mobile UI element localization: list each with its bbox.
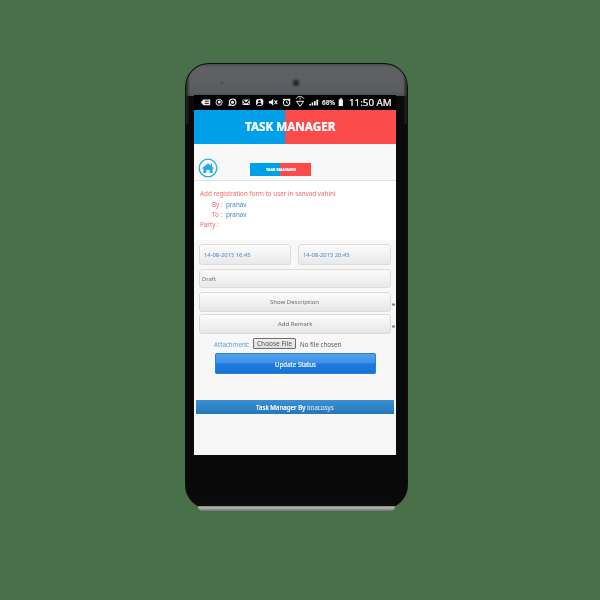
staticText: 14-08-2015 20:45 — [303, 251, 350, 259]
staticText: Add registration form to user in sanvad … — [200, 189, 336, 198]
staticText: imacosys — [307, 403, 334, 411]
staticText: By : — [212, 200, 226, 209]
staticText: 11:50 AM — [349, 96, 392, 109]
staticText: To : — [212, 210, 226, 219]
staticText: No file chosen — [300, 340, 342, 348]
button[interactable]: Task Manager By — [196, 400, 394, 414]
staticText: Draft — [202, 275, 216, 283]
staticText: Party : — [200, 220, 219, 229]
staticText: TASK MANAGER — [245, 118, 336, 134]
button[interactable]: Choose File — [257, 338, 292, 349]
button[interactable]: Home — [198, 158, 218, 178]
button[interactable]: Add Remark — [199, 314, 391, 334]
button[interactable]: Show Description — [199, 292, 391, 312]
staticText: Update Status — [275, 360, 317, 368]
staticText: TASK MANAGER — [266, 167, 297, 172]
staticText: 68% — [322, 98, 336, 107]
button[interactable]: Draft — [199, 269, 391, 288]
staticText: Choose File — [257, 339, 292, 348]
button[interactable]: 14-08-2015 20:45 — [298, 244, 391, 265]
button[interactable]: 14-08-2015 16:45 — [199, 244, 291, 265]
staticText: Attachment: — [214, 340, 250, 348]
staticText: Show Description — [270, 298, 320, 306]
staticText: Add Remark — [278, 320, 313, 328]
staticText: pranav — [226, 200, 247, 209]
button[interactable]: Update Status — [215, 353, 376, 374]
staticText: pranav — [226, 210, 247, 219]
button[interactable]: TASK MANAGER — [250, 163, 311, 176]
staticText: Task Manager By — [256, 403, 307, 411]
staticText: 14-08-2015 16:45 — [204, 251, 251, 259]
